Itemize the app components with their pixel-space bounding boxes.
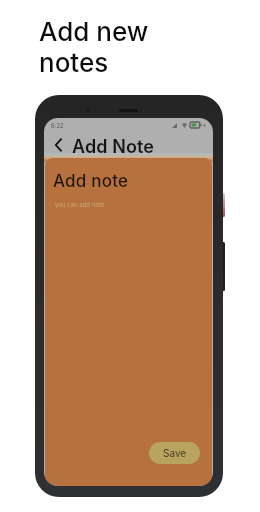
staticText: Save [163,447,187,459]
button[interactable]: Back [50,136,67,153]
staticText: Add new [39,16,149,47]
button[interactable]: Save [149,442,200,464]
staticText: notes [39,47,109,78]
staticText: you can add note [55,201,105,208]
staticText: Add note [53,171,129,192]
staticText: 6:22 [51,122,64,129]
staticText: Add Note [72,136,155,153]
